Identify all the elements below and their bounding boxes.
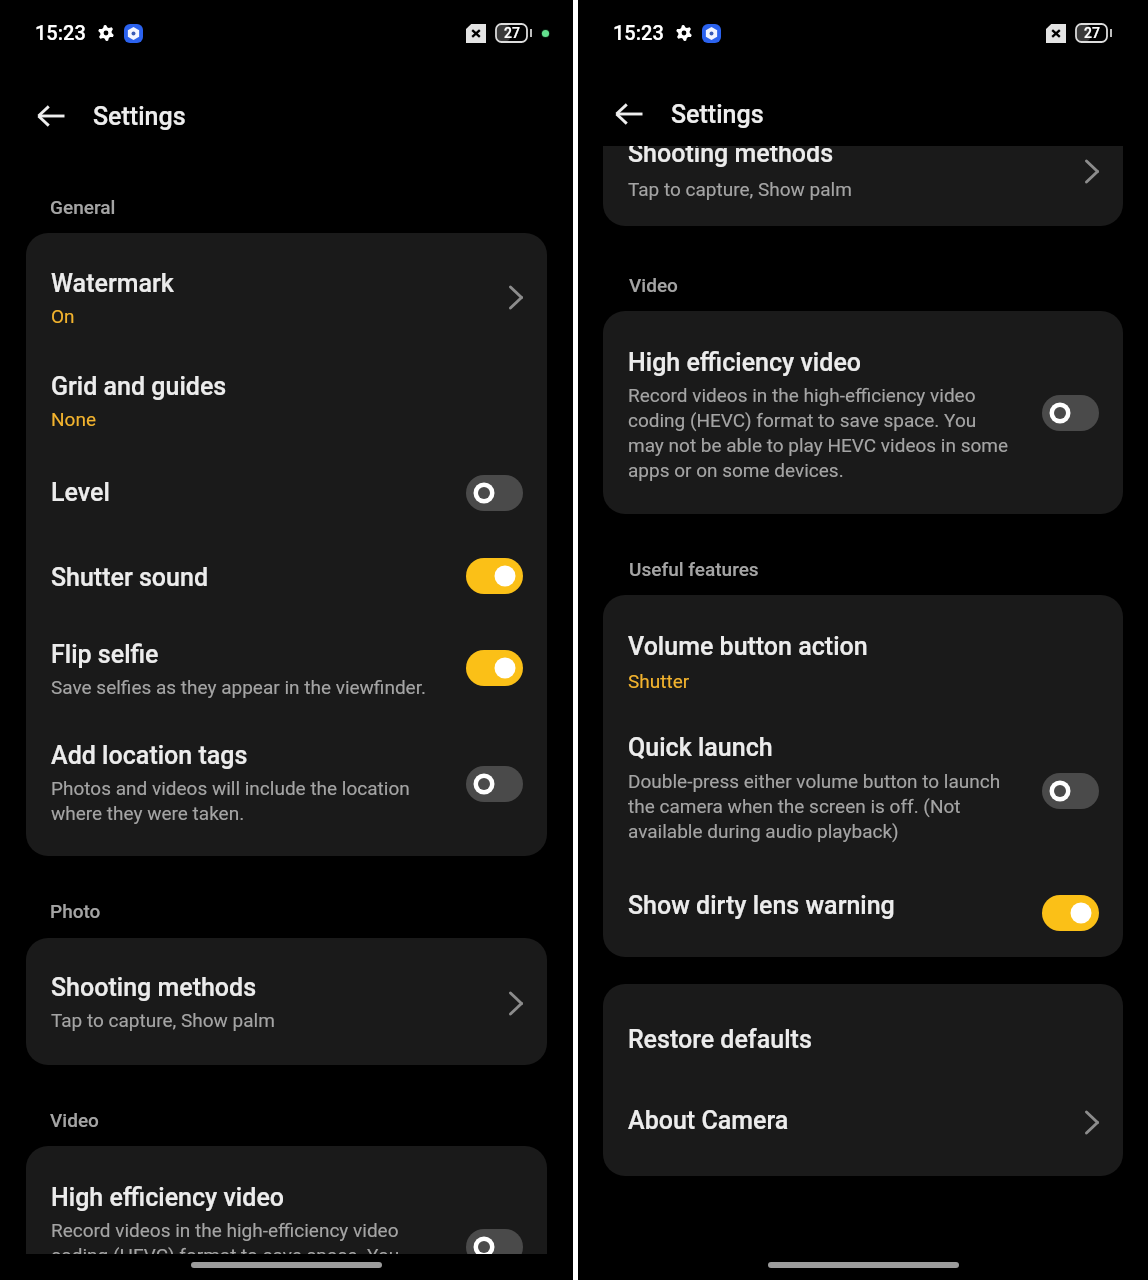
staticText: Save selfies as they appear in the viewf… bbox=[51, 674, 426, 699]
button[interactable]: Switch on bbox=[466, 650, 523, 686]
button[interactable]: Switch off bbox=[1042, 773, 1099, 809]
staticText: Useful features bbox=[629, 559, 759, 581]
staticText: Video bbox=[629, 275, 678, 297]
staticText: 15:23 bbox=[613, 21, 664, 45]
staticText: 27 bbox=[1084, 26, 1100, 41]
staticText: Shooting methods bbox=[628, 146, 834, 168]
button[interactable]: Switch off bbox=[1042, 395, 1099, 431]
staticText: Grid and guides bbox=[51, 372, 227, 401]
button[interactable]: Switch on bbox=[1042, 895, 1099, 931]
staticText: Add location tags bbox=[51, 741, 248, 770]
button[interactable]: Switch on bbox=[466, 558, 523, 594]
staticText: Photo bbox=[50, 901, 101, 923]
button[interactable]: Shooting methods bbox=[603, 146, 1123, 226]
button[interactable]: Switch off bbox=[466, 475, 523, 511]
staticText: Level bbox=[51, 478, 110, 507]
staticText: Watermark bbox=[51, 269, 174, 298]
button[interactable]: Quick launch bbox=[603, 713, 1123, 869]
staticText: High efficiency video bbox=[628, 348, 862, 377]
staticText: On bbox=[51, 303, 75, 328]
button[interactable]: About Camera bbox=[603, 1078, 1123, 1176]
button[interactable]: Level bbox=[26, 454, 547, 535]
staticText: 15:23 bbox=[35, 21, 86, 45]
button[interactable]: Watermark bbox=[26, 233, 547, 350]
button[interactable]: Shutter sound bbox=[26, 535, 547, 616]
button[interactable]: Switch off bbox=[466, 766, 523, 802]
button[interactable]: Back bbox=[29, 94, 73, 138]
staticText: Show dirty lens warning bbox=[628, 891, 895, 920]
button[interactable]: High efficiency video bbox=[26, 1146, 547, 1280]
staticText: Quick launch bbox=[628, 733, 773, 762]
staticText: General bbox=[50, 197, 116, 219]
staticText: 27 bbox=[504, 26, 520, 41]
button[interactable]: Volume button action bbox=[603, 595, 1123, 713]
staticText: None bbox=[51, 406, 96, 431]
button[interactable]: Flip selfie bbox=[26, 616, 547, 720]
button[interactable]: Switch off bbox=[466, 1229, 523, 1265]
staticText: Flip selfie bbox=[51, 640, 159, 669]
staticText: Tap to capture, Show palm bbox=[51, 1007, 275, 1032]
button[interactable]: Shooting methods bbox=[26, 938, 547, 1065]
button[interactable]: High efficiency video bbox=[603, 311, 1123, 514]
staticText: Restore defaults bbox=[628, 1025, 812, 1054]
staticText: Tap to capture, Show palm bbox=[628, 176, 852, 201]
staticText: Record videos in the high-efficiency vid… bbox=[628, 382, 1012, 482]
staticText: Video bbox=[50, 1110, 99, 1132]
staticText: Volume button action bbox=[628, 632, 868, 661]
button[interactable]: Back bbox=[607, 92, 651, 136]
staticText: Shooting methods bbox=[51, 973, 257, 1002]
staticText: Double-press either volume button to lau… bbox=[628, 768, 1012, 843]
staticText: Shutter sound bbox=[51, 563, 209, 592]
staticText: Settings bbox=[671, 100, 764, 129]
staticText: Settings bbox=[93, 102, 186, 131]
button[interactable]: Show dirty lens warning bbox=[603, 869, 1123, 957]
button[interactable]: Add location tags bbox=[26, 720, 547, 856]
staticText: Record videos in the high-efficiency vid… bbox=[51, 1217, 436, 1280]
staticText: Shutter bbox=[628, 668, 690, 693]
staticText: High efficiency video bbox=[51, 1183, 285, 1212]
button[interactable]: Restore defaults bbox=[603, 984, 1123, 1078]
staticText: About Camera bbox=[628, 1106, 789, 1135]
button[interactable]: Grid and guides bbox=[26, 350, 547, 454]
staticText: Photos and videos will include the locat… bbox=[51, 775, 427, 825]
